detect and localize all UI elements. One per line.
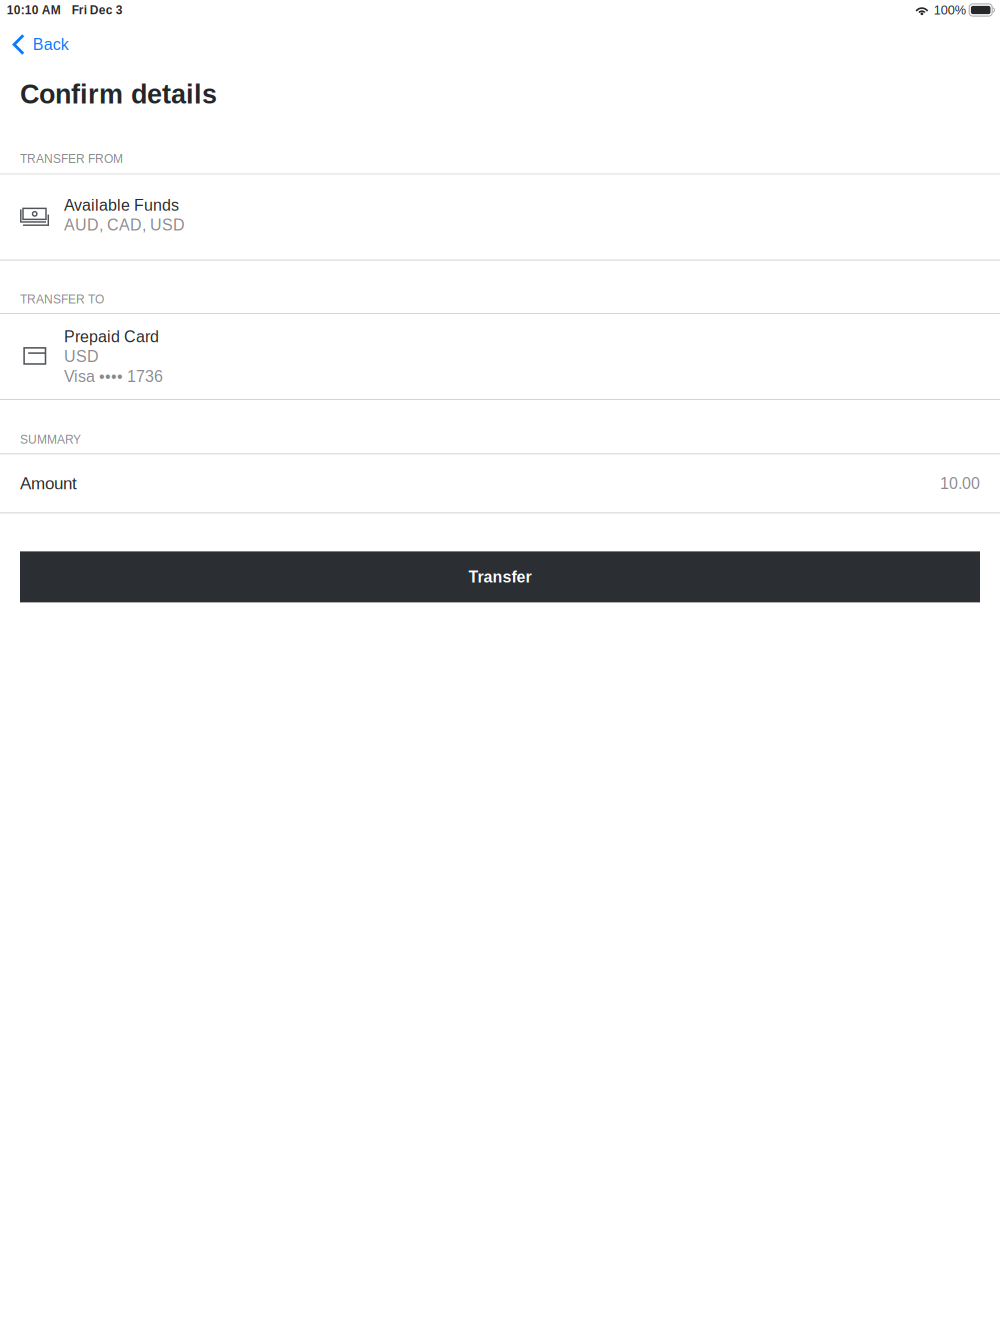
staticText: Visa •••• 1736 xyxy=(64,367,163,385)
staticText: 10:10 AM xyxy=(7,3,61,17)
staticText: AUD, CAD, USD xyxy=(64,216,185,234)
staticText: Transfer xyxy=(468,568,531,586)
staticText: Prepaid Card xyxy=(64,328,159,346)
button[interactable]: Back xyxy=(0,20,1000,64)
staticText: TRANSFER TO xyxy=(20,293,104,306)
staticText: Amount xyxy=(20,474,77,493)
staticText: Fri Dec 3 xyxy=(72,3,123,17)
button[interactable]: Prepaid Card xyxy=(0,314,1000,399)
button[interactable]: Transfer xyxy=(20,551,980,602)
staticText: 100% xyxy=(934,3,966,17)
staticText: SUMMARY xyxy=(20,433,81,446)
staticText: Available Funds xyxy=(64,196,179,214)
staticText: 10.00 xyxy=(940,474,980,492)
staticText: TRANSFER FROM xyxy=(20,152,123,166)
staticText: Confirm details xyxy=(20,79,217,109)
staticText: USD xyxy=(64,347,99,365)
staticText: Back xyxy=(33,36,69,53)
button[interactable]: Available Funds xyxy=(0,175,1000,260)
